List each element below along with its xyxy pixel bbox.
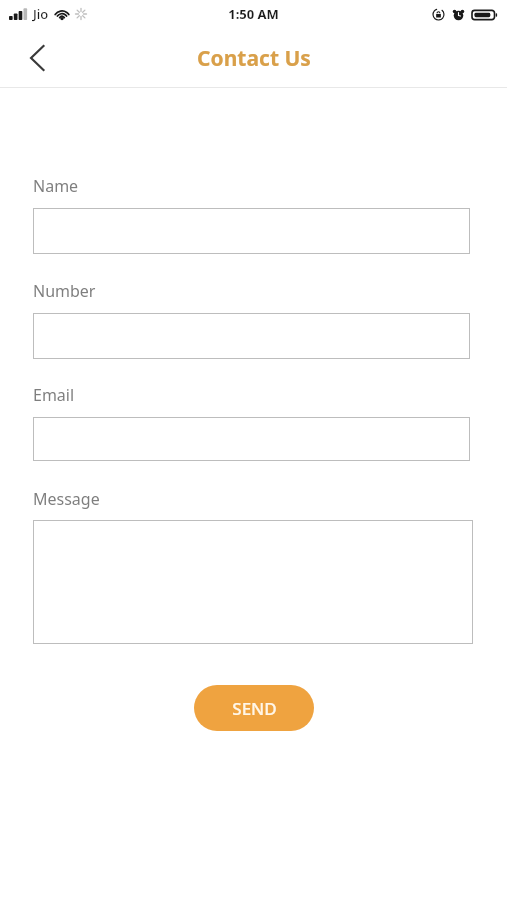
staticText: Message xyxy=(33,488,100,510)
button[interactable] xyxy=(33,313,470,359)
staticText: Number xyxy=(33,280,96,302)
staticText: Name xyxy=(33,175,79,197)
button[interactable]: Back xyxy=(14,35,60,81)
staticText: SEND xyxy=(232,697,277,720)
button[interactable]: SEND xyxy=(194,685,314,731)
staticText: Jio xyxy=(33,5,49,23)
staticText: 1:50 AM xyxy=(228,5,279,23)
button[interactable] xyxy=(33,417,470,461)
button[interactable] xyxy=(33,208,470,254)
staticText: Email xyxy=(33,384,75,406)
button[interactable] xyxy=(33,520,473,644)
staticText: Contact Us xyxy=(197,44,311,73)
